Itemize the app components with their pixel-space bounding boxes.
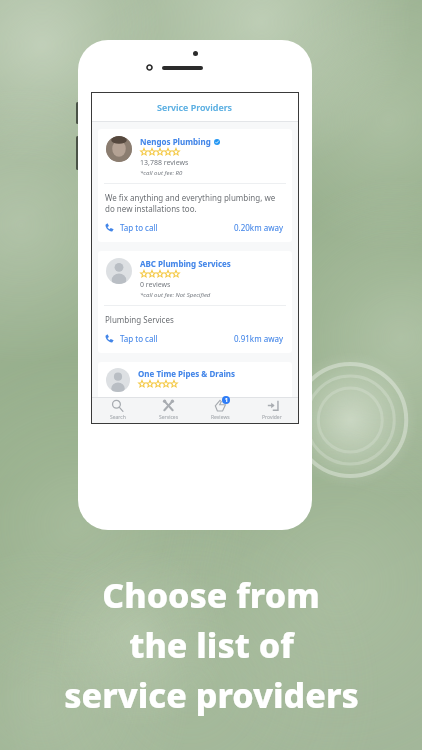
button[interactable]: Reviews	[194, 397, 246, 423]
staticText: Tap to call	[120, 333, 158, 344]
staticText: 0.91km away	[234, 333, 284, 344]
staticText: Choose from	[102, 572, 320, 618]
staticText: 0 reviews	[140, 280, 171, 290]
staticText: Provider	[262, 414, 282, 421]
staticText: Plumbing Services	[105, 314, 174, 325]
staticText: Services	[159, 414, 179, 421]
staticText: Tap to call	[120, 222, 158, 233]
staticText: We fix anything and everything plumbing,…	[105, 192, 276, 214]
staticText: ABC Plumbing Services	[140, 258, 231, 269]
button[interactable]: ABC Plumbing Services	[98, 251, 292, 353]
button[interactable]: Search	[92, 397, 143, 423]
button[interactable]: Services	[143, 397, 194, 423]
staticText: the list of	[129, 622, 294, 668]
staticText: *call out fee: Not Specified	[140, 291, 211, 299]
staticText: 13,788 reviews	[140, 158, 189, 168]
staticText: Search	[110, 414, 126, 421]
staticText: 0.20km away	[234, 222, 284, 233]
button[interactable]: Tap to call	[105, 333, 158, 344]
button[interactable]: Nengos Plumbing	[98, 129, 292, 242]
staticText: *call out fee: R0	[140, 169, 183, 177]
staticText: Service Providers	[157, 101, 233, 113]
staticText: Reviews	[211, 414, 230, 421]
button[interactable]: Provider	[246, 397, 298, 423]
button[interactable]: Tap to call	[105, 222, 158, 233]
staticText: Nengos Plumbing	[140, 136, 211, 147]
button[interactable]: One Time Pipes & Drains	[98, 362, 292, 397]
staticText: One Time Pipes & Drains	[138, 368, 236, 379]
staticText: service providers	[64, 672, 359, 718]
staticText: 1	[225, 397, 228, 404]
